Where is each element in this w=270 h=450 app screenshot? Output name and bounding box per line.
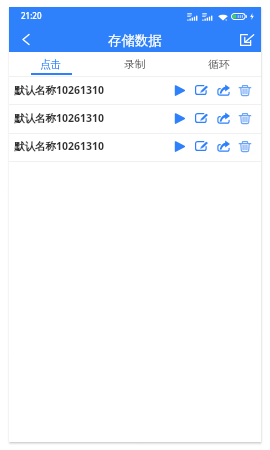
button[interactable]: Delete (234, 77, 255, 105)
staticText: 存储数据 (108, 32, 162, 49)
button[interactable]: Delete (234, 105, 255, 133)
button[interactable]: Share (212, 77, 234, 105)
button[interactable]: 点击 (9, 52, 93, 75)
button[interactable]: Edit (190, 133, 212, 161)
button[interactable]: Edit (190, 105, 212, 133)
button[interactable]: Edit (190, 77, 212, 105)
button[interactable]: Share (212, 105, 234, 133)
staticText: 点击 (40, 58, 62, 72)
button[interactable]: Delete (234, 133, 255, 161)
staticText: 默认名称10261310 (14, 111, 105, 125)
button[interactable]: 录制 (93, 52, 177, 75)
button[interactable]: 默认名称10261310 (9, 133, 261, 161)
staticText: 录制 (124, 58, 146, 72)
button[interactable]: Import data (236, 26, 258, 53)
button[interactable]: Back (9, 26, 43, 53)
staticText: 循环 (208, 58, 230, 72)
staticText: 默认名称10261310 (14, 139, 105, 153)
button[interactable]: Play (169, 77, 190, 105)
button[interactable]: Share (212, 133, 234, 161)
button[interactable]: Play (169, 105, 190, 133)
button[interactable]: 默认名称10261310 (9, 77, 261, 105)
button[interactable]: Play (169, 133, 190, 161)
button[interactable]: 默认名称10261310 (9, 105, 261, 133)
staticText: 默认名称10261310 (14, 83, 105, 97)
staticText: 21:20 (21, 10, 42, 21)
button[interactable]: 循环 (177, 52, 261, 75)
